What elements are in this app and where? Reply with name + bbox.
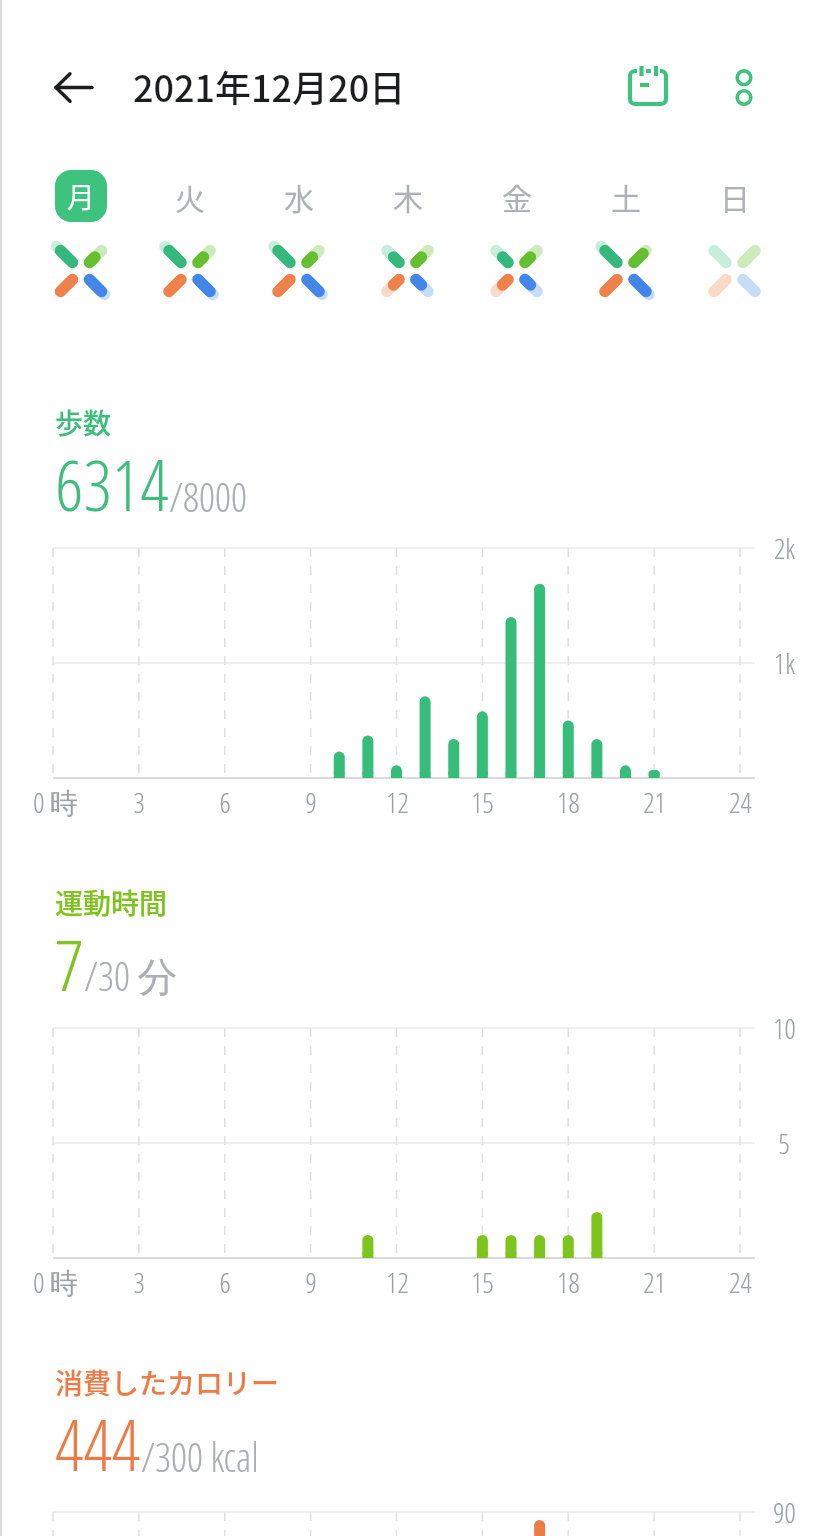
staticText: 3 xyxy=(133,1263,145,1301)
button[interactable] xyxy=(48,65,94,111)
staticText: 木 xyxy=(393,175,423,218)
staticText: 6314 xyxy=(55,435,169,532)
staticText: 5 xyxy=(778,1124,790,1162)
staticText: 21 xyxy=(643,1263,666,1301)
staticText: 月 xyxy=(67,176,96,217)
staticText: 24 xyxy=(729,783,752,821)
button[interactable] xyxy=(244,239,353,303)
button[interactable] xyxy=(618,58,672,112)
staticText: 9 xyxy=(305,1263,317,1301)
button[interactable] xyxy=(571,239,680,303)
staticText: 444 xyxy=(55,1395,141,1492)
staticText: 18 xyxy=(557,783,580,821)
staticText: 6 xyxy=(219,783,231,821)
button[interactable]: 金 xyxy=(491,170,543,222)
staticText: 21 xyxy=(643,783,666,821)
staticText: /300 kcal xyxy=(141,1429,259,1483)
staticText: 水 xyxy=(284,175,314,218)
staticText: 金 xyxy=(502,175,532,218)
button[interactable] xyxy=(462,239,571,303)
button[interactable]: 日 xyxy=(709,170,761,222)
button[interactable] xyxy=(353,239,462,303)
staticText: 2021年12月20日 xyxy=(133,60,406,112)
staticText: 歩数 xyxy=(55,402,112,443)
button[interactable]: 水 xyxy=(273,170,325,222)
button[interactable]: 火 xyxy=(164,170,216,222)
staticText: 3 xyxy=(133,783,145,821)
button[interactable] xyxy=(727,60,763,112)
staticText: 日 xyxy=(720,175,750,218)
staticText: 2k xyxy=(774,529,795,567)
staticText: 7 xyxy=(55,915,84,1012)
staticText: 6 xyxy=(219,1263,231,1301)
button[interactable]: 土 xyxy=(600,170,652,222)
button[interactable] xyxy=(135,239,244,303)
staticText: 12 xyxy=(386,783,409,821)
staticText: 15 xyxy=(471,1263,494,1301)
staticText: 土 xyxy=(611,175,641,218)
staticText: 15 xyxy=(471,783,494,821)
staticText: 18 xyxy=(557,1263,580,1301)
staticText: /8000 xyxy=(169,469,247,523)
staticText: 消費したカロリー xyxy=(55,1362,280,1403)
staticText: /30 分 xyxy=(84,948,178,1003)
staticText: 9 xyxy=(305,783,317,821)
button[interactable] xyxy=(680,239,789,303)
button[interactable]: 月 xyxy=(55,170,107,222)
staticText: 0 時 xyxy=(33,783,78,821)
staticText: 12 xyxy=(386,1263,409,1301)
button[interactable]: 木 xyxy=(382,170,434,222)
staticText: 0 時 xyxy=(33,1263,78,1301)
staticText: 火 xyxy=(175,175,205,218)
staticText: 24 xyxy=(729,1263,752,1301)
staticText: 90 xyxy=(773,1493,796,1531)
staticText: 1k xyxy=(774,644,795,682)
staticText: 10 xyxy=(773,1009,796,1047)
staticText: 運動時間 xyxy=(55,882,168,923)
button[interactable] xyxy=(27,239,135,303)
